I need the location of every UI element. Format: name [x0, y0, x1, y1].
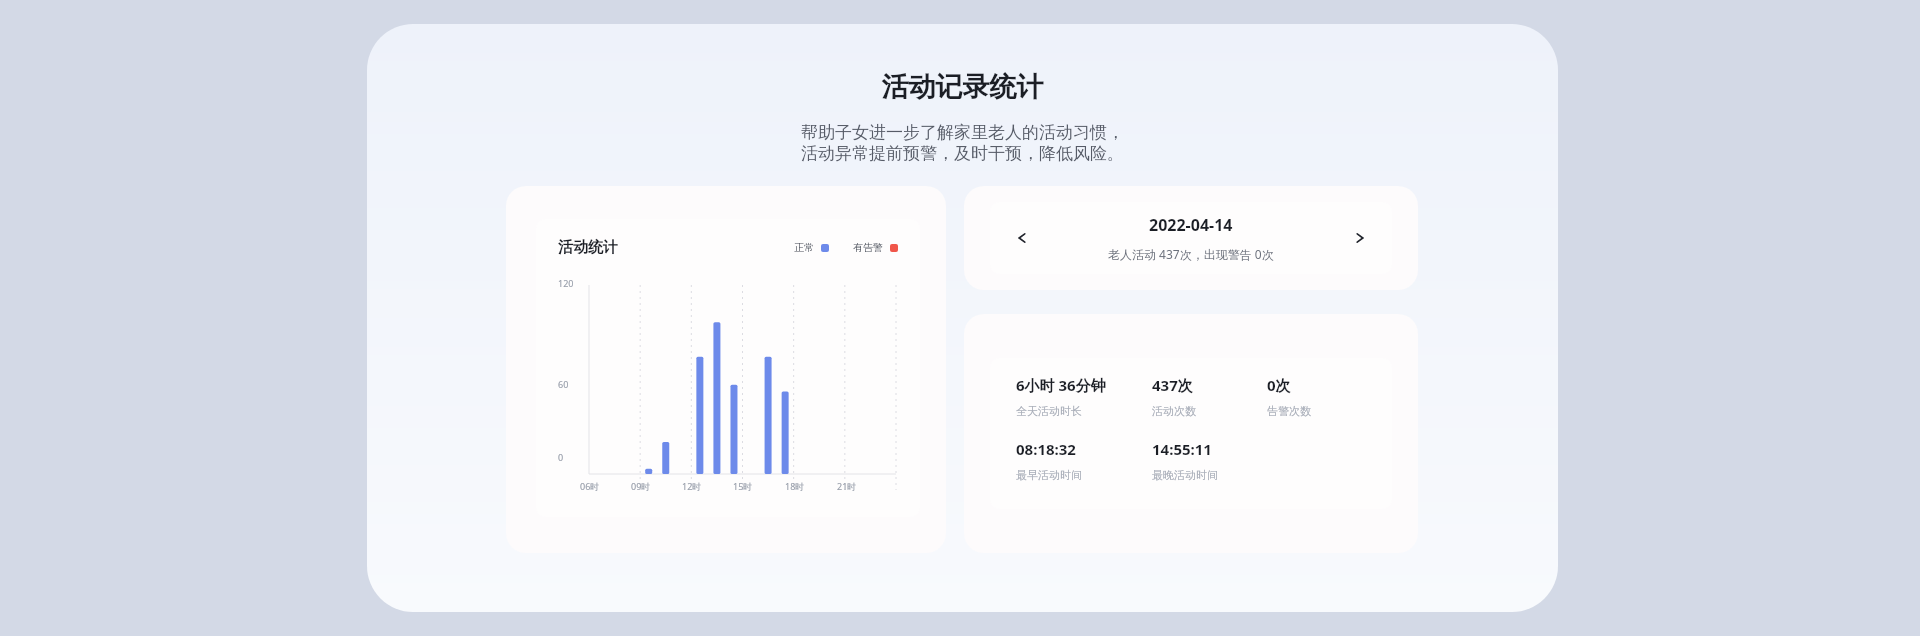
staticText: 06时 — [580, 480, 600, 492]
staticText: 21时 — [837, 480, 857, 492]
staticText: 全天活动时长 — [1016, 404, 1082, 418]
staticText: 14:55:11 — [1152, 439, 1212, 459]
staticText: 120 — [558, 277, 574, 289]
staticText: 活动次数 — [1152, 404, 1196, 418]
button[interactable]: 活动统计 — [506, 186, 946, 553]
button[interactable]: 正常 — [794, 241, 829, 254]
staticText: 12时 — [682, 480, 702, 492]
staticText: 0 — [558, 451, 564, 463]
staticText: 08:18:32 — [1016, 439, 1076, 459]
staticText: 最早活动时间 — [1016, 468, 1082, 482]
button[interactable]: 0次 — [1267, 375, 1376, 418]
button[interactable]: 6小时 36分钟 — [1016, 375, 1152, 418]
button[interactable]: Next day — [1346, 224, 1374, 252]
staticText: 有告警 — [853, 241, 883, 254]
staticText: 437次 — [1152, 375, 1193, 395]
staticText: 最晚活动时间 — [1152, 468, 1218, 482]
staticText: 18时 — [785, 480, 805, 492]
staticText: 告警次数 — [1267, 404, 1311, 418]
button[interactable]: 6小时 36分钟 — [964, 314, 1418, 553]
button[interactable]: 08:18:32 — [1016, 439, 1152, 482]
button[interactable]: Previous day — [1008, 224, 1036, 252]
staticText: 活动记录统计 — [367, 70, 1558, 104]
staticText: 活动异常提前预警，及时干预，降低风险。 — [367, 143, 1558, 164]
button[interactable]: Previous day — [964, 186, 1418, 290]
staticText: 活动统计 — [558, 238, 618, 257]
staticText: 老人活动 437次，出现警告 0次 — [1108, 246, 1274, 262]
staticText: 60 — [558, 378, 569, 390]
button[interactable]: 14:55:11 — [1152, 439, 1267, 482]
staticText: 6小时 36分钟 — [1016, 375, 1106, 395]
button[interactable]: 437次 — [1152, 375, 1267, 418]
staticText: 正常 — [794, 241, 814, 254]
staticText: 帮助子女进一步了解家里老人的活动习惯， — [367, 122, 1558, 143]
staticText: 0次 — [1267, 375, 1291, 395]
staticText: 2022-04-14 — [1149, 214, 1233, 236]
staticText: 09时 — [631, 480, 651, 492]
button[interactable]: 有告警 — [853, 241, 898, 254]
staticText: 15时 — [733, 480, 753, 492]
